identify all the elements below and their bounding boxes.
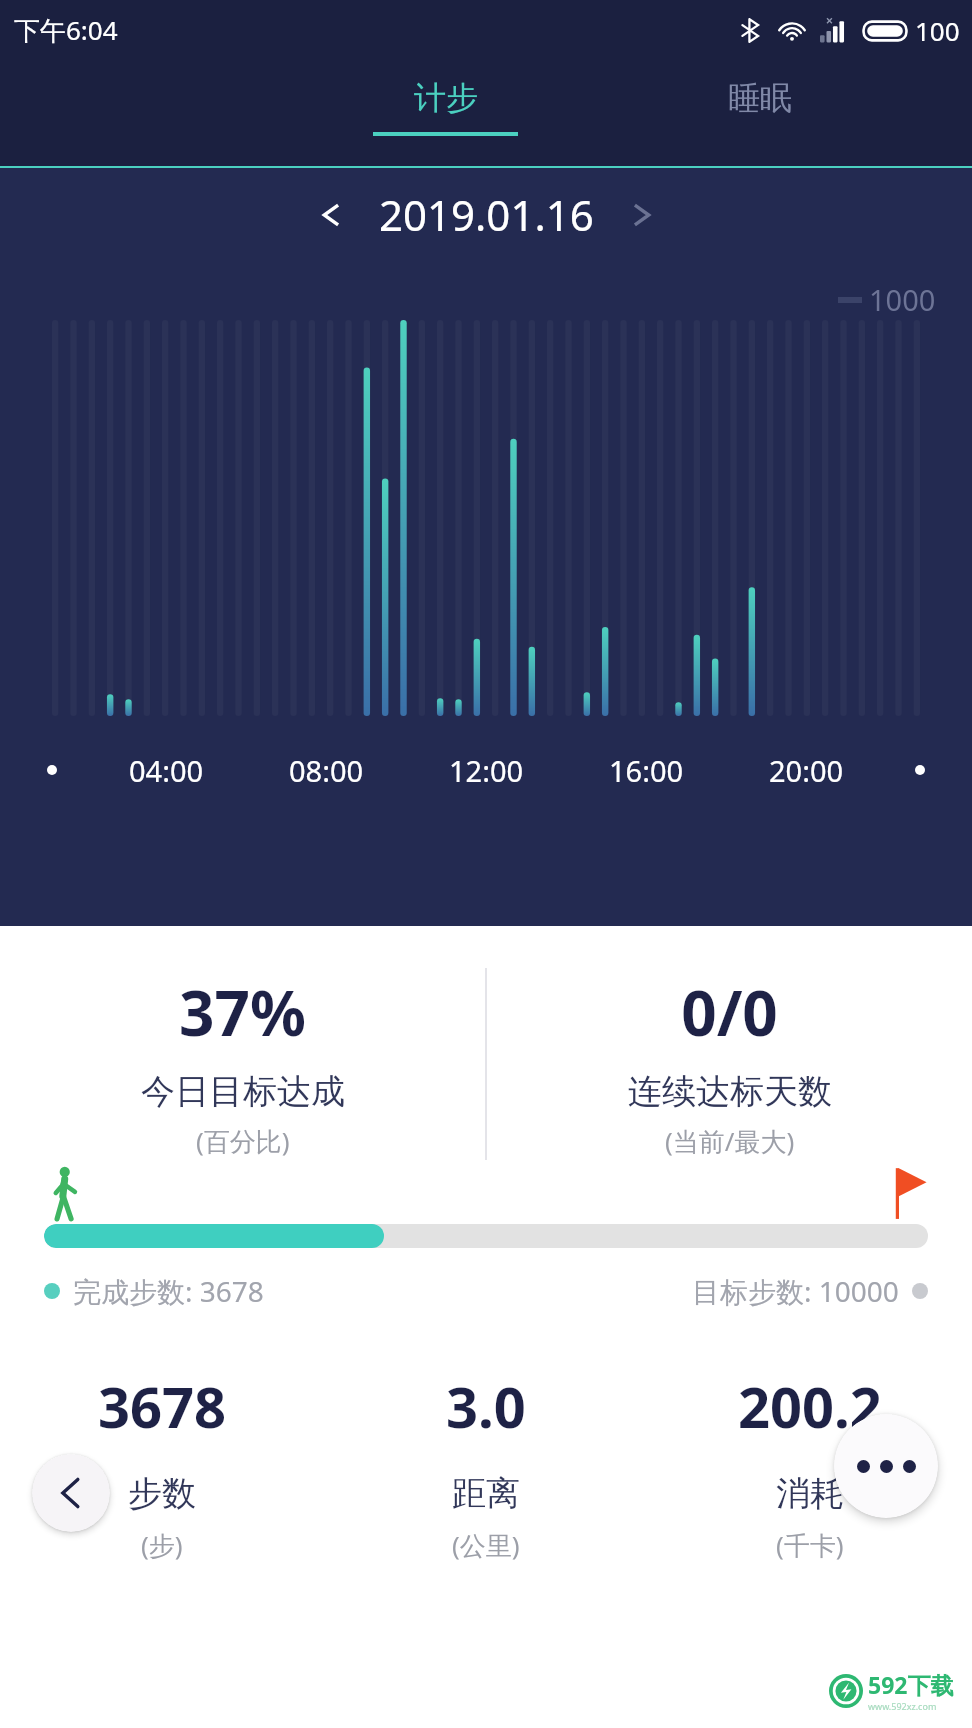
staticText: 37% [179, 970, 306, 1054]
staticText: 目标步数: 10000 [692, 1272, 899, 1310]
staticText: 1000 [869, 280, 936, 319]
staticText: (千卡) [776, 1527, 844, 1563]
staticText: 睡眠 [728, 78, 792, 118]
staticText: (当前/最大) [665, 1123, 795, 1159]
button[interactable]: Back [32, 1454, 110, 1532]
staticText: 消耗 [776, 1472, 844, 1515]
staticText: 步数 [128, 1472, 196, 1515]
staticText: 距离 [452, 1472, 520, 1515]
staticText: (百分比) [196, 1123, 290, 1159]
staticText: 20:00 [769, 751, 844, 790]
staticText: (公里) [452, 1527, 520, 1563]
button[interactable]: 37% [0, 970, 485, 1159]
staticText: 200.2 [738, 1368, 882, 1444]
staticText: 0/0 [681, 970, 778, 1054]
staticText: 连续达标天数 [628, 1070, 832, 1113]
staticText: 今日目标达成 [141, 1070, 345, 1113]
button[interactable]: 睡眠 [660, 60, 860, 168]
staticText: 3.0 [446, 1368, 526, 1444]
staticText: www.592xz.com [868, 1700, 937, 1712]
staticText: 计步 [414, 78, 478, 118]
staticText: (步) [141, 1527, 183, 1563]
button[interactable]: Previous day [303, 187, 359, 243]
button[interactable]: 3678 [0, 1368, 324, 1563]
staticText: 16:00 [609, 751, 684, 790]
button[interactable]: 200.2 [648, 1368, 972, 1563]
button[interactable]: More options [834, 1414, 938, 1518]
staticText: 2019.01.16 [379, 186, 594, 243]
staticText: 08:00 [289, 751, 364, 790]
staticText: 100 [915, 13, 960, 48]
button[interactable]: Next day [614, 187, 670, 243]
staticText: 12:00 [449, 751, 524, 790]
staticText: 592下载 [868, 1669, 954, 1700]
staticText: 3678 [98, 1368, 227, 1444]
staticText: 04:00 [129, 751, 204, 790]
staticText: 完成步数: 3678 [73, 1272, 264, 1310]
button[interactable]: 0/0 [487, 970, 972, 1159]
staticText: 下午6:04 [14, 12, 118, 48]
button[interactable]: 3.0 [324, 1368, 648, 1563]
button[interactable]: 计步 [360, 60, 530, 168]
